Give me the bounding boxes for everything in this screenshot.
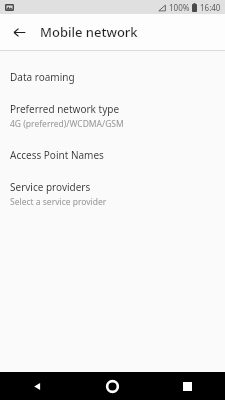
button[interactable]: Service providers <box>0 171 225 217</box>
button[interactable]: Access Point Names <box>0 139 225 171</box>
staticText: 16:40 <box>200 2 221 13</box>
staticText: Mobile network <box>40 23 138 41</box>
staticText: Access Point Names <box>10 148 104 162</box>
button[interactable]: Back <box>6 19 32 45</box>
staticText: 100% <box>169 2 190 13</box>
button[interactable]: Preferred network type <box>0 93 225 139</box>
staticText: Service providers <box>10 180 91 194</box>
button[interactable]: Recent apps <box>150 372 225 400</box>
button[interactable]: Data roaming <box>0 61 225 93</box>
staticText: Preferred network type <box>10 102 120 116</box>
button[interactable]: Back <box>0 372 75 400</box>
staticText: Data roaming <box>10 70 75 84</box>
button[interactable]: Home <box>75 372 150 400</box>
staticText: 4G (preferred)/WCDMA/GSM <box>10 118 124 130</box>
staticText: Select a service provider <box>10 196 107 208</box>
